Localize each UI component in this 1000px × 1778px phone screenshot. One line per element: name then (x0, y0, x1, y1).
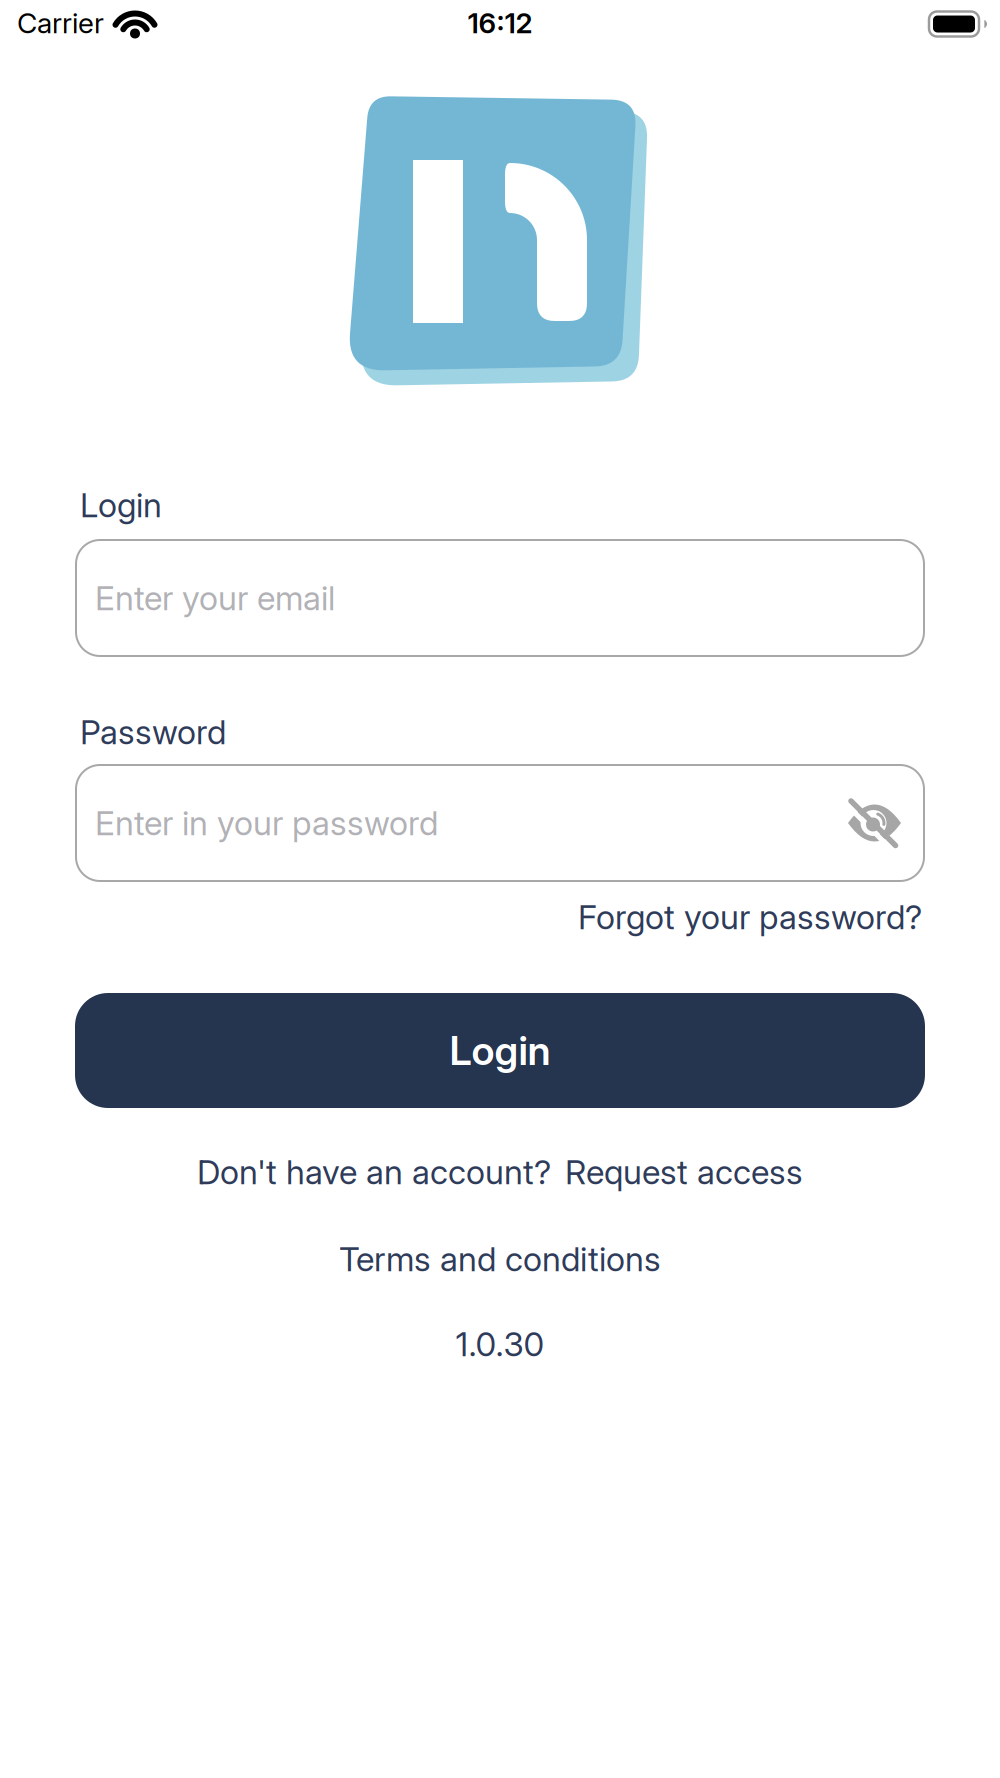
staticText: Carrier (17, 6, 104, 40)
staticText: Password (80, 712, 226, 752)
staticText: Forgot your password? (578, 897, 922, 937)
staticText: 16:12 (467, 6, 532, 40)
staticText: Don't have an account? (197, 1152, 551, 1192)
button[interactable]: Login (75, 993, 925, 1108)
staticText: Login (80, 485, 162, 525)
staticText: Login (449, 1026, 550, 1075)
button[interactable]: Forgot your password? (578, 897, 922, 937)
staticText: Enter your email (95, 578, 335, 618)
button[interactable]: Request access (565, 1152, 803, 1192)
button[interactable] (848, 800, 901, 846)
button[interactable]: Terms and conditions (339, 1239, 661, 1279)
staticText: Terms and conditions (339, 1239, 661, 1279)
staticText: Enter in your password (95, 803, 438, 843)
button[interactable]: Enter in your password (76, 765, 924, 881)
staticText: Request access (565, 1152, 803, 1192)
staticText: 1.0.30 (455, 1324, 544, 1364)
button[interactable]: Enter your email (76, 540, 924, 656)
